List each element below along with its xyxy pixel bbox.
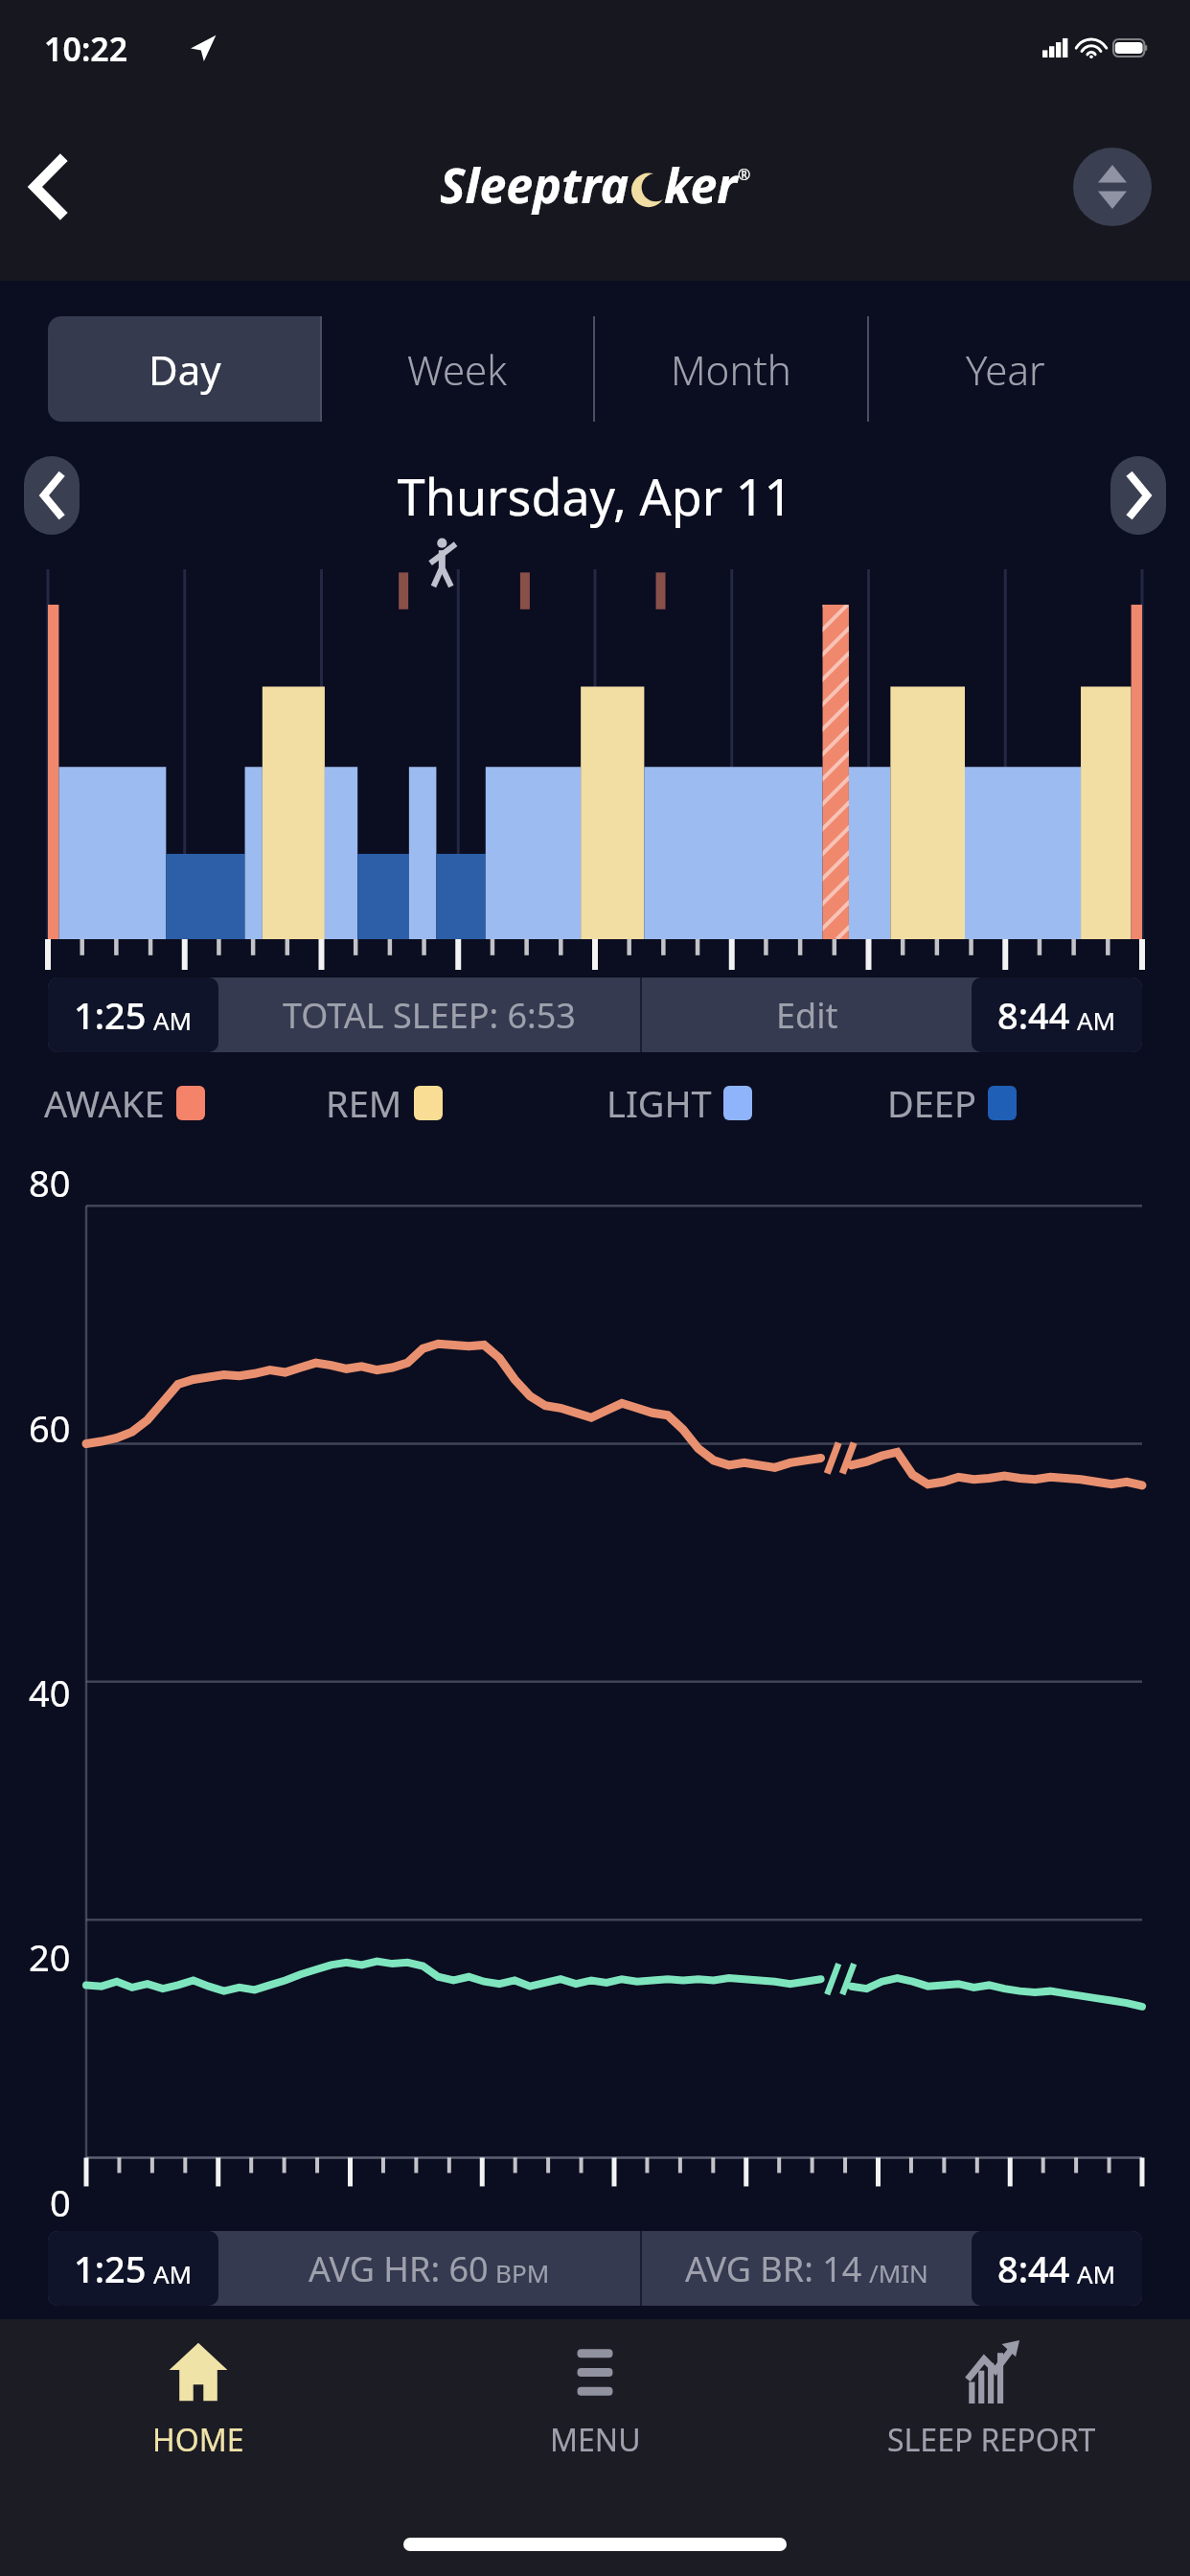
button[interactable]: Week (321, 316, 594, 422)
staticText: Week (407, 342, 508, 397)
button[interactable]: Edit (642, 977, 972, 1052)
staticText: Sleeptra (440, 152, 629, 218)
staticText: ® (738, 164, 751, 185)
staticText: SLEEP REPORT (887, 2419, 1096, 2461)
button[interactable]: Previous day (24, 456, 80, 535)
staticText: AM (1077, 2257, 1116, 2290)
staticText: AM (153, 1003, 193, 1037)
staticText: 1:25 (74, 990, 147, 1040)
button[interactable]: 1:25 (48, 2231, 218, 2306)
staticText: BPM (495, 2256, 550, 2289)
staticText: 80 (29, 1158, 71, 1207)
staticText: 10:22 (44, 27, 128, 71)
staticText: HOME (152, 2419, 244, 2461)
staticText: Year (966, 342, 1045, 397)
staticText: LIGHT (606, 1078, 712, 1128)
button[interactable]: MENU (397, 2319, 793, 2511)
staticText: 40 (29, 1667, 71, 1717)
staticText: /MIN (869, 2256, 928, 2289)
staticText: TOTAL SLEEP: 6:53 (283, 992, 576, 1039)
staticText: Month (671, 342, 791, 397)
button[interactable]: 8:44 (972, 977, 1142, 1052)
button[interactable]: SLEEP REPORT (793, 2319, 1190, 2511)
staticText: Day (149, 342, 221, 397)
button[interactable]: Month (594, 316, 868, 422)
button[interactable]: Change view (1073, 148, 1152, 226)
button[interactable]: 8:44 (972, 2231, 1142, 2306)
staticText: DEEP (887, 1078, 976, 1128)
staticText: 0 (50, 2177, 71, 2227)
staticText: AM (1077, 1003, 1116, 1037)
staticText: AWAKE (44, 1078, 165, 1128)
staticText: 8:44 (997, 2243, 1070, 2293)
staticText: 60 (29, 1403, 71, 1453)
button[interactable]: Back (13, 152, 82, 221)
staticText: Thursday, Apr 11 (80, 462, 1110, 530)
staticText: 8:44 (997, 990, 1070, 1040)
button[interactable]: Next day (1110, 456, 1166, 535)
staticText: AVG HR: 60 (309, 2245, 489, 2292)
staticText: 20 (29, 1932, 71, 1982)
staticText: MENU (550, 2419, 641, 2461)
button[interactable]: AVG BR: 14 (642, 2231, 972, 2306)
button[interactable]: 1:25 (48, 977, 218, 1052)
staticText: 1:25 (74, 2243, 147, 2293)
staticText: Edit (776, 992, 838, 1039)
button[interactable]: AVG HR: 60 (218, 2231, 640, 2306)
button[interactable]: TOTAL SLEEP: 6:53 (218, 977, 640, 1052)
staticText: REM (326, 1078, 402, 1128)
staticText: AM (153, 2257, 193, 2290)
button[interactable]: Year (868, 316, 1142, 422)
staticText: AVG BR: 14 (685, 2245, 862, 2292)
button[interactable]: Day (48, 316, 321, 422)
staticText: ker (664, 152, 738, 218)
button[interactable]: HOME (0, 2319, 397, 2511)
